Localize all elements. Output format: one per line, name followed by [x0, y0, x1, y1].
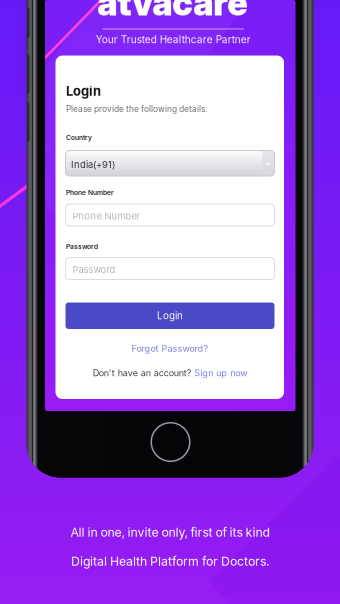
- staticText: Password: [66, 242, 98, 251]
- staticText: Sign up now: [194, 368, 247, 378]
- staticText: atvacare: [97, 0, 247, 24]
- staticText: India(+91): [71, 159, 115, 170]
- staticText: Digital Health Platform for Doctors.: [71, 554, 269, 569]
- button[interactable]: Login: [65, 302, 274, 329]
- button[interactable]: Forgot Password?: [65, 340, 274, 356]
- staticText: Country: [66, 133, 92, 142]
- staticText: Password: [72, 264, 115, 275]
- staticText: Forgot Password?: [131, 343, 208, 354]
- staticText: All in one, invite only, first of its ki…: [70, 525, 269, 540]
- staticText: Phone Number: [66, 188, 114, 197]
- staticText: Please provide the following details.: [66, 104, 207, 114]
- staticText: Don't have an account?: [93, 368, 192, 378]
- button[interactable]: India(+91): [65, 150, 274, 176]
- button[interactable]: Don't have an account?: [65, 365, 274, 381]
- staticText: Your Trusted Healthcare Partner: [96, 34, 251, 46]
- staticText: Phone Number: [72, 210, 140, 222]
- staticText: Login: [66, 83, 101, 99]
- staticText: Login: [157, 310, 183, 322]
